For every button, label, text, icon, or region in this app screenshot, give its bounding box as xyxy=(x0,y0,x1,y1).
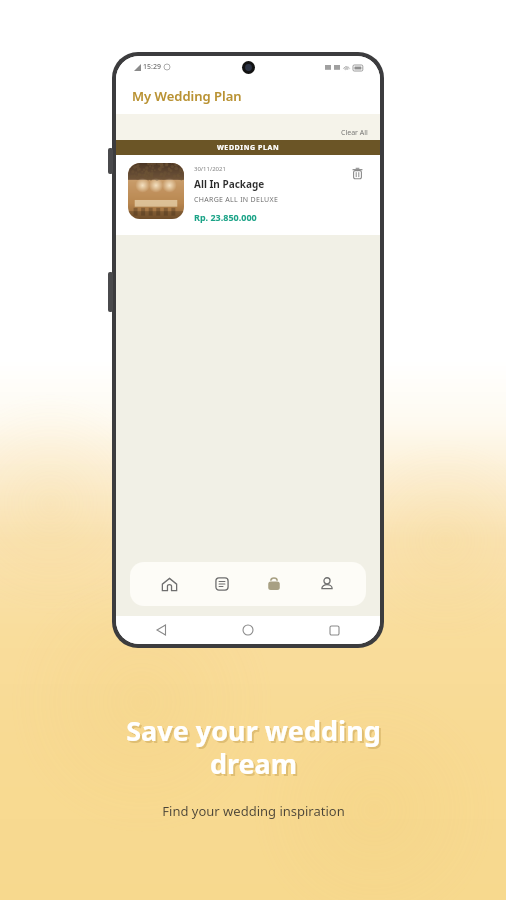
staticText: Save your wedding dream xyxy=(126,712,381,782)
button[interactable]: Profile xyxy=(305,562,349,606)
button[interactable]: Clear All xyxy=(341,128,380,140)
button[interactable]: Home xyxy=(147,562,191,606)
staticText: Save your wedding dream xyxy=(128,714,383,784)
button[interactable]: 30/11/2021 xyxy=(116,155,380,235)
button[interactable]: Delete plan xyxy=(347,163,368,184)
button[interactable]: Home xyxy=(236,618,260,642)
button[interactable]: Recents xyxy=(322,618,346,642)
staticText: CHARGE ALL IN DELUXE xyxy=(194,195,279,205)
staticText: Find your wedding inspiration xyxy=(162,802,345,820)
button[interactable]: Orders xyxy=(200,562,244,606)
staticText: My Wedding Plan xyxy=(132,87,242,105)
staticText: WEDDING PLAN xyxy=(217,143,280,153)
staticText: All In Package xyxy=(194,177,265,191)
button[interactable]: Back xyxy=(150,618,174,642)
staticText: 15:29 xyxy=(143,62,161,72)
staticText: Clear All xyxy=(341,128,368,138)
button[interactable]: Plan xyxy=(252,562,296,606)
staticText: Rp. 23.850.000 xyxy=(194,211,257,223)
staticText: 30/11/2021 xyxy=(194,165,226,173)
